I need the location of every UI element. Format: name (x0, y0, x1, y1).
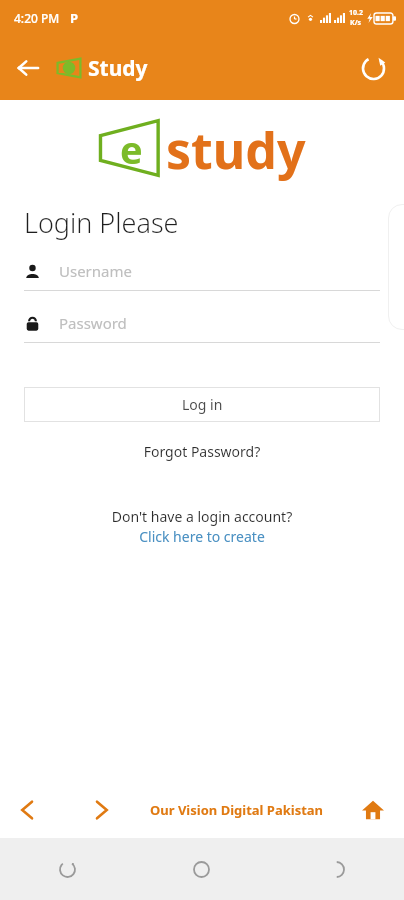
staticText: Our Vision Digital Pakistan (150, 801, 324, 819)
button[interactable]: Click here to create (0, 526, 404, 549)
button[interactable]: Back (6, 46, 50, 90)
staticText: Log in (182, 395, 223, 414)
staticText: K/s (350, 18, 362, 28)
button[interactable]: Back (6, 789, 48, 831)
button[interactable]: Forward (80, 789, 122, 831)
button[interactable]: Recents (0, 838, 134, 900)
staticText: 4:20 PM (14, 10, 60, 26)
button[interactable]: Back (269, 838, 404, 900)
staticText: 10.2 (349, 8, 363, 18)
staticText: Don't have a login account? (0, 507, 404, 526)
button[interactable]: Forgot Password? (0, 438, 404, 465)
staticText: P (70, 9, 79, 27)
staticText: e (120, 123, 143, 175)
staticText: Password (59, 313, 127, 333)
staticText: Username (59, 261, 132, 281)
button[interactable]: Log in (24, 387, 380, 422)
button[interactable]: Home (134, 838, 269, 900)
staticText: Login Please (24, 204, 179, 241)
button[interactable]: Refresh (350, 45, 396, 91)
staticText: Study (88, 54, 148, 83)
button[interactable]: Home (352, 789, 394, 831)
staticText: study (166, 116, 306, 184)
